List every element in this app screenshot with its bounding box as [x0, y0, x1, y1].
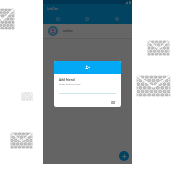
staticText: Enter friend e-mail [59, 82, 81, 85]
button[interactable]: Friends [72, 13, 102, 24]
button[interactable]: Chats [43, 13, 72, 24]
button[interactable]: Profile [102, 13, 132, 24]
staticText: OK [111, 101, 116, 105]
button[interactable]: subhan [43, 24, 132, 38]
staticText: LetsChat [47, 7, 59, 11]
staticText: Add friend [59, 78, 75, 82]
button[interactable]: Add friend [119, 151, 129, 161]
staticText: subhan [63, 29, 73, 33]
button[interactable]: OK [106, 99, 121, 107]
